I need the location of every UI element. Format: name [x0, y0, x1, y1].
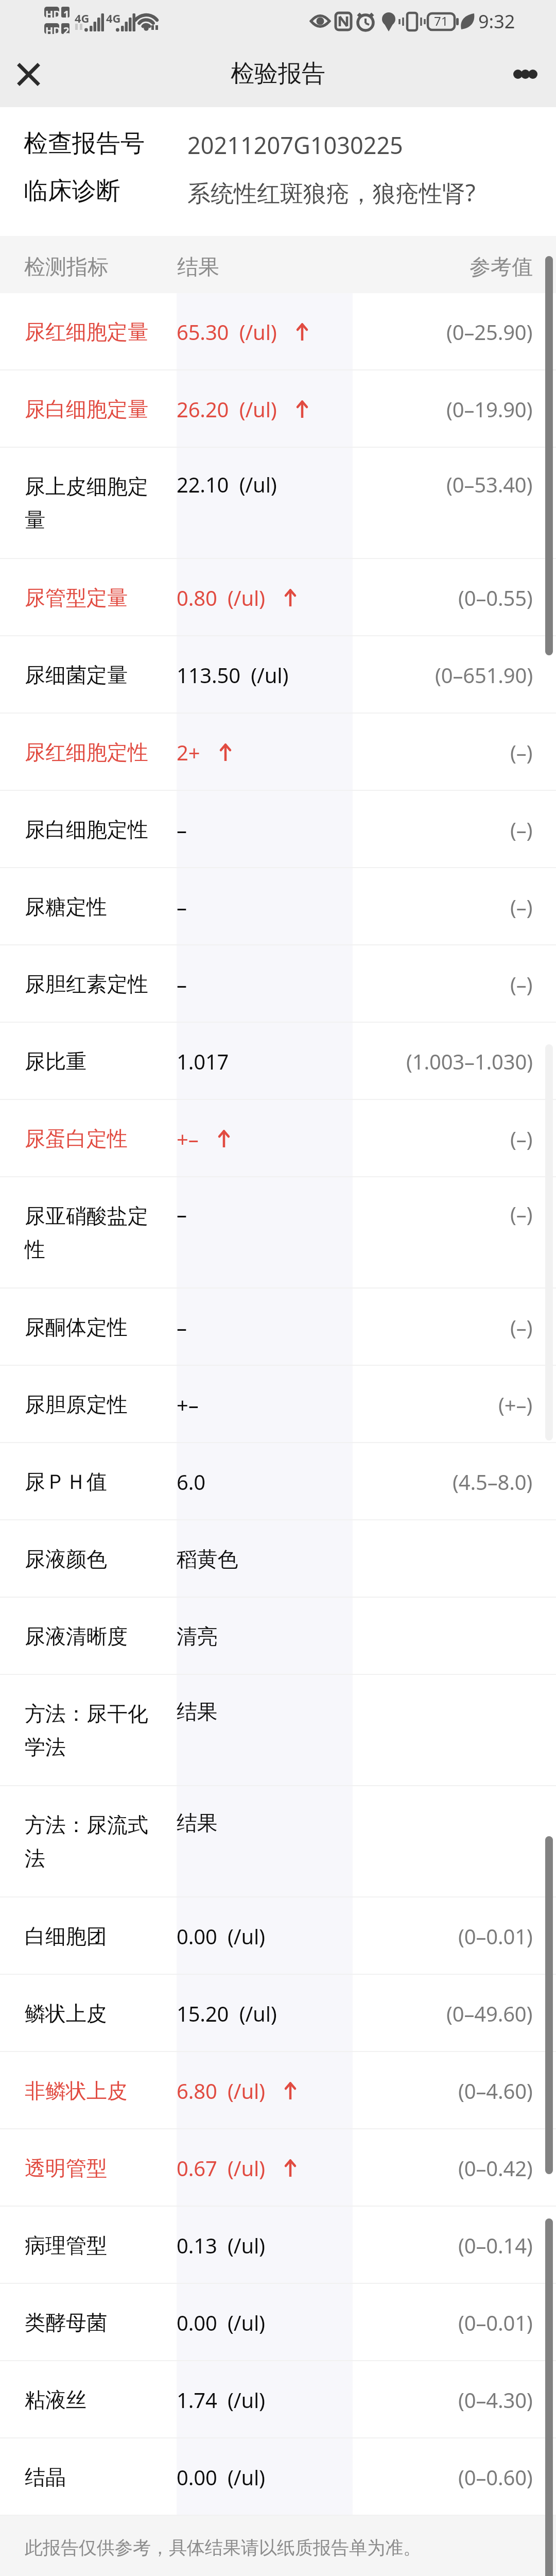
- staticText: (0–49.60): [446, 1999, 533, 2027]
- staticText: (+–): [498, 1391, 533, 1418]
- staticText: 透明管型: [25, 2155, 107, 2181]
- staticText: 0.00 (/ul): [177, 2309, 265, 2336]
- staticText: 尿管型定量: [25, 585, 128, 611]
- button[interactable]: 尿管型定量: [0, 559, 556, 636]
- staticText: 4G: [106, 10, 121, 26]
- staticText: 临床诊断: [24, 176, 120, 206]
- staticText: (0–0.14): [458, 2231, 533, 2259]
- button[interactable]: 尿酮体定性: [0, 1289, 556, 1366]
- staticText: 尿细菌定量: [25, 662, 128, 688]
- staticText: (–): [510, 738, 533, 766]
- staticText: 方法：尿流式法: [25, 1812, 166, 1872]
- staticText: 0.00 (/ul): [177, 1922, 265, 1950]
- staticText: 方法：尿干化学法: [25, 1701, 166, 1760]
- button[interactable]: 鳞状上皮: [0, 1975, 556, 2052]
- button[interactable]: 粘液丝: [0, 2361, 556, 2438]
- staticText: 结果: [177, 254, 219, 281]
- button[interactable]: 方法：尿流式法: [0, 1786, 556, 1897]
- staticText: 病理管型: [25, 2232, 107, 2258]
- staticText: 65.30 (/ul): [177, 318, 277, 346]
- staticText: 2+: [177, 738, 200, 766]
- staticText: 系统性红斑狼疮，狼疮性肾?: [187, 177, 476, 208]
- staticText: –: [177, 893, 187, 921]
- staticText: 尿胆原定性: [25, 1392, 128, 1417]
- staticText: 尿白细胞定性: [25, 817, 148, 842]
- staticText: 0.67 (/ul): [177, 2154, 265, 2182]
- staticText: (0–25.90): [446, 318, 533, 346]
- button[interactable]: 尿亚硝酸盐定性: [0, 1177, 556, 1289]
- staticText: 0.13 (/ul): [177, 2231, 265, 2259]
- button[interactable]: 尿红细胞定性: [0, 714, 556, 791]
- staticText: (0–0.01): [458, 1922, 533, 1950]
- button[interactable]: 结晶: [0, 2438, 556, 2516]
- staticText: 尿比重: [25, 1048, 86, 1074]
- staticText: (1.003–1.030): [406, 1047, 533, 1075]
- staticText: (0–19.90): [446, 395, 533, 423]
- staticText: 1.74 (/ul): [177, 2386, 265, 2414]
- button[interactable]: 尿胆原定性: [0, 1366, 556, 1443]
- button[interactable]: 尿糖定性: [0, 868, 556, 945]
- staticText: (–): [510, 1125, 533, 1153]
- staticText: HD: [45, 24, 61, 38]
- staticText: 20211207G1030225: [187, 129, 403, 161]
- button[interactable]: 尿白细胞定量: [0, 370, 556, 448]
- button[interactable]: 尿白细胞定性: [0, 791, 556, 868]
- staticText: 6.80 (/ul): [177, 2077, 265, 2105]
- staticText: 尿红细胞定量: [25, 319, 148, 345]
- staticText: (0–0.55): [458, 584, 533, 612]
- button[interactable]: 尿细菌定量: [0, 636, 556, 714]
- staticText: 尿酮体定性: [25, 1314, 128, 1340]
- staticText: (–): [510, 970, 533, 998]
- staticText: 类酵母菌: [25, 2310, 107, 2335]
- button[interactable]: 类酵母菌: [0, 2284, 556, 2361]
- button[interactable]: 方法：尿干化学法: [0, 1675, 556, 1786]
- button[interactable]: 尿蛋白定性: [0, 1100, 556, 1177]
- staticText: 结晶: [25, 2464, 66, 2490]
- button[interactable]: 尿液清晰度: [0, 1598, 556, 1675]
- staticText: 非鳞状上皮: [25, 2078, 128, 2104]
- button[interactable]: 尿ＰＨ值: [0, 1443, 556, 1520]
- button[interactable]: 尿液颜色: [0, 1520, 556, 1598]
- button[interactable]: 关闭: [0, 41, 57, 107]
- staticText: 71: [434, 12, 448, 29]
- button[interactable]: 病理管型: [0, 2207, 556, 2284]
- staticText: 2: [63, 24, 69, 38]
- staticText: 尿液颜色: [25, 1546, 107, 1572]
- staticText: (0–0.01): [458, 2309, 533, 2336]
- button[interactable]: 尿比重: [0, 1023, 556, 1100]
- button[interactable]: 非鳞状上皮: [0, 2052, 556, 2129]
- button[interactable]: 尿上皮细胞定量: [0, 448, 556, 559]
- staticText: 15.20 (/ul): [177, 1999, 277, 2027]
- staticText: –: [177, 1313, 187, 1341]
- staticText: (–): [510, 816, 533, 843]
- staticText: (0–651.90): [435, 661, 533, 689]
- staticText: 参考值: [470, 254, 533, 281]
- staticText: 检验报告: [231, 59, 325, 89]
- staticText: 1.017: [177, 1047, 229, 1075]
- staticText: 结果: [177, 1810, 218, 1836]
- staticText: 尿ＰＨ值: [25, 1469, 107, 1495]
- staticText: –: [177, 816, 187, 843]
- staticText: –: [177, 1200, 187, 1228]
- staticText: (0–4.30): [458, 2386, 533, 2414]
- staticText: 0.80 (/ul): [177, 584, 265, 612]
- button[interactable]: 尿胆红素定性: [0, 945, 556, 1023]
- staticText: (–): [510, 893, 533, 921]
- staticText: 鳞状上皮: [25, 2001, 107, 2026]
- staticText: 9:32: [478, 9, 515, 34]
- staticText: 6.0: [177, 1468, 205, 1496]
- staticText: 此报告仅供参考，具体结果请以纸质报告单为准。: [25, 2536, 421, 2559]
- button[interactable]: 更多: [494, 41, 556, 107]
- button[interactable]: 透明管型: [0, 2129, 556, 2207]
- staticText: 清亮: [177, 1623, 218, 1649]
- staticText: 113.50 (/ul): [177, 661, 289, 689]
- staticText: 尿糖定性: [25, 894, 107, 920]
- staticText: (0–4.60): [458, 2077, 533, 2105]
- staticText: 22.10 (/ul): [177, 470, 277, 498]
- button[interactable]: 白细胞团: [0, 1897, 556, 1975]
- button[interactable]: 尿红细胞定量: [0, 293, 556, 370]
- staticText: (0–53.40): [446, 470, 533, 498]
- staticText: 尿红细胞定性: [25, 739, 148, 765]
- staticText: (0–0.42): [458, 2154, 533, 2182]
- staticText: (–): [510, 1313, 533, 1341]
